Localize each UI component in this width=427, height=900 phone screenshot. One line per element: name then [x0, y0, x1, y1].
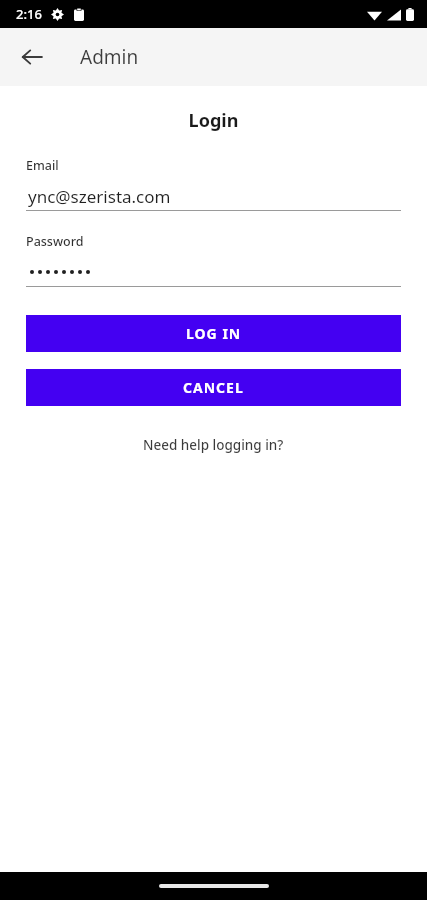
staticText: ync@szerista.com: [28, 185, 171, 208]
staticText: Login: [0, 108, 427, 133]
staticText: Password: [26, 233, 84, 250]
staticText: LOG IN: [186, 324, 242, 343]
staticText: Email: [26, 157, 59, 174]
button[interactable]: ync@szerista.com: [26, 182, 401, 211]
staticText: Need help logging in?: [143, 436, 284, 454]
button[interactable]: [26, 258, 401, 287]
staticText: Admin: [80, 44, 139, 70]
staticText: CANCEL: [183, 378, 244, 397]
button[interactable]: CANCEL: [26, 369, 401, 406]
button[interactable]: LOG IN: [26, 315, 401, 352]
button[interactable]: Need help logging in?: [131, 432, 296, 458]
staticText: 2:16: [16, 5, 42, 23]
button[interactable]: Back: [8, 33, 56, 81]
